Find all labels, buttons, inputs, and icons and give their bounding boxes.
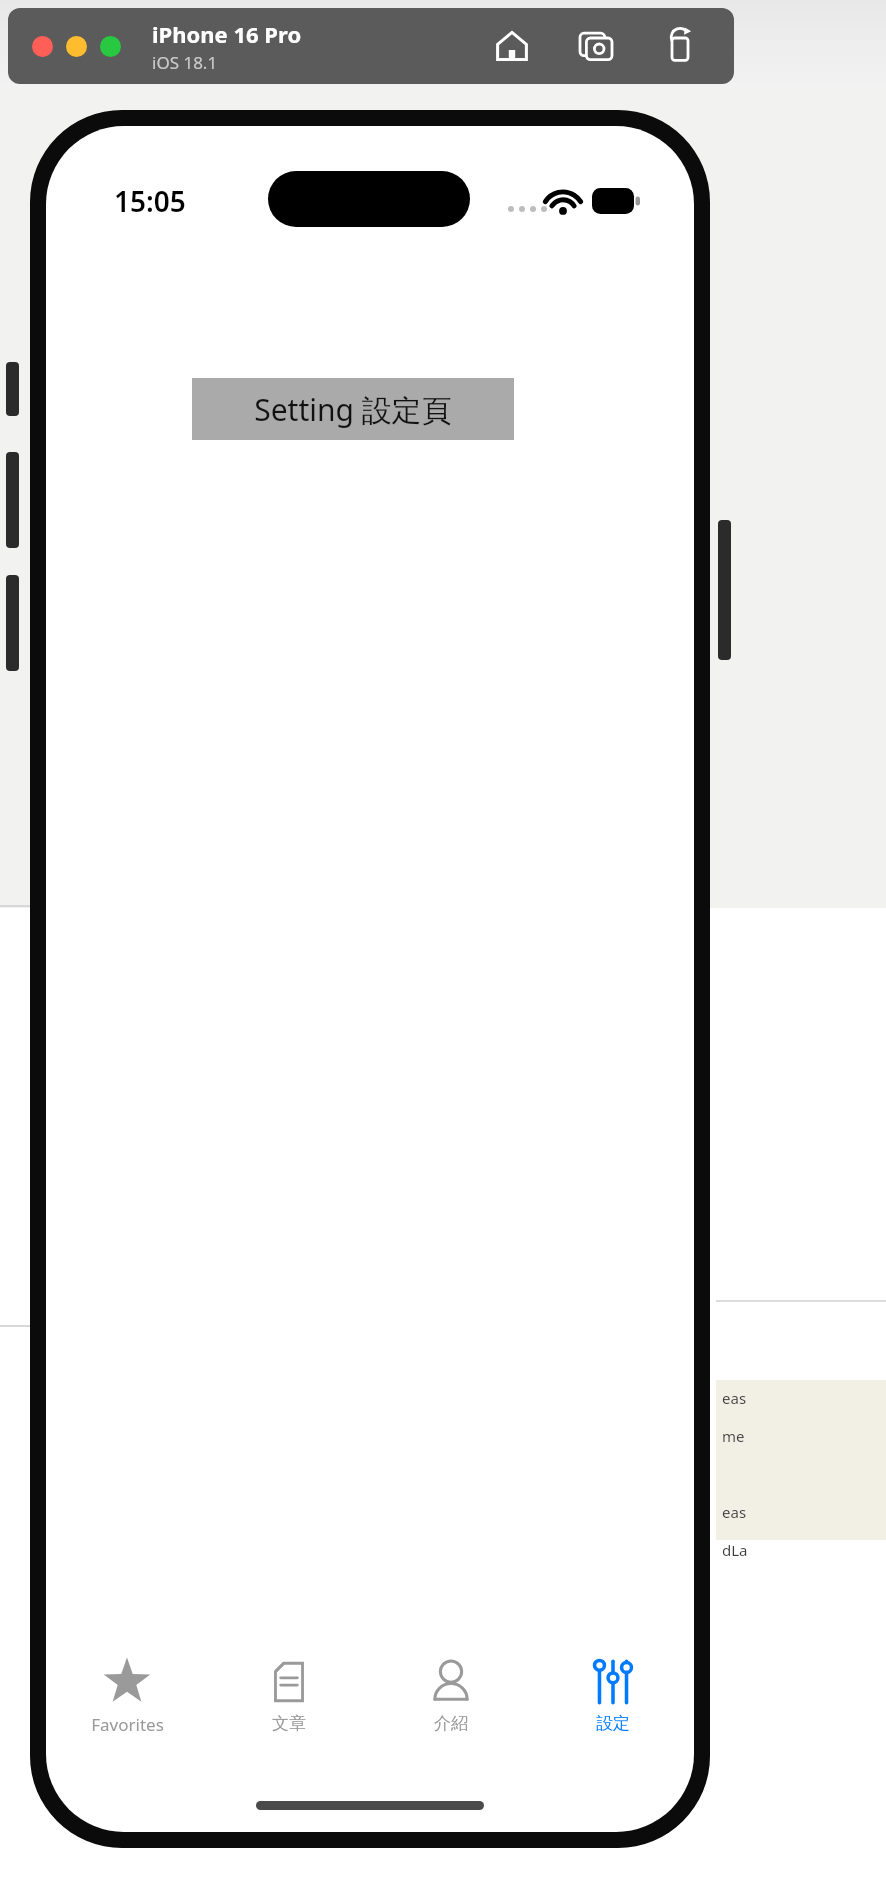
button[interactable]: 設定 — [532, 1650, 694, 1754]
staticText: iOS 18.1 — [152, 51, 218, 74]
button[interactable]: Rotate — [660, 26, 700, 66]
button[interactable]: Home — [492, 26, 532, 66]
staticText: 文章 — [272, 1713, 306, 1734]
button[interactable] — [32, 36, 53, 57]
staticText: 介紹 — [434, 1713, 468, 1734]
button[interactable] — [100, 36, 121, 57]
button[interactable] — [66, 36, 87, 57]
staticText: Setting 設定頁 — [254, 389, 452, 430]
button[interactable]: 介紹 — [370, 1650, 532, 1754]
staticText: 15:05 — [114, 182, 186, 220]
staticText: Favorites — [91, 1713, 164, 1736]
staticText: 設定 — [596, 1713, 630, 1734]
button[interactable]: 文章 — [208, 1650, 370, 1754]
button[interactable]: Screenshot — [576, 26, 616, 66]
button[interactable]: Setting 設定頁 — [192, 378, 514, 440]
staticText: iPhone 16 Pro — [152, 19, 302, 49]
staticText: eas me eas dLa — [722, 1388, 748, 1560]
button[interactable]: Favorites — [46, 1650, 208, 1754]
